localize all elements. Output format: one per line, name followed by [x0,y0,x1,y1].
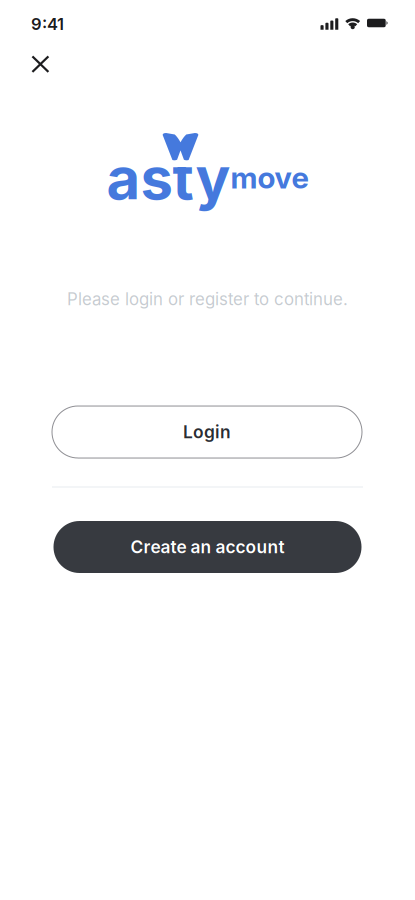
button[interactable]: Create an account [53,521,361,573]
staticText: Create an account [130,536,284,557]
staticText: 9:41 [31,14,64,34]
staticText: asty [106,143,230,213]
staticText: move [230,159,308,196]
button[interactable]: Close [20,44,60,84]
staticText: Please login or register to continue. [67,289,348,309]
button[interactable]: Login [52,406,362,458]
staticText: Login [183,421,231,442]
